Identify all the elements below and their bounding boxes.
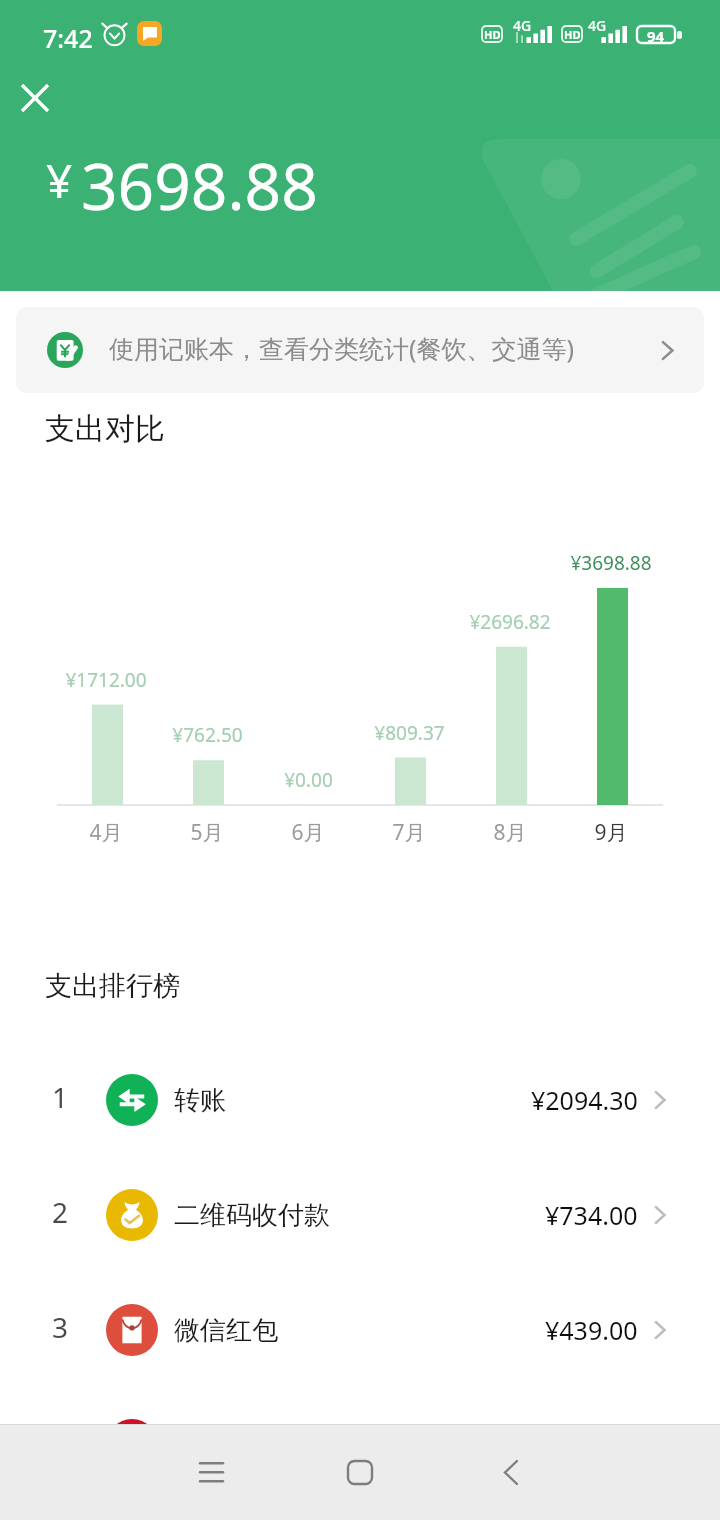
staticText: 支出排行榜 bbox=[45, 969, 180, 1003]
staticText: 9月 bbox=[594, 818, 628, 847]
staticText: 二维码收付款 bbox=[174, 1199, 330, 1232]
staticText: 转账 bbox=[174, 1084, 226, 1117]
staticText: ¥1712.00 bbox=[65, 667, 147, 693]
button[interactable]: Back bbox=[466, 1427, 556, 1517]
staticText: 5月 bbox=[190, 818, 224, 847]
button[interactable]: Close bbox=[10, 73, 60, 123]
button[interactable]: 使用记账本，查看分类统计(餐饮、交通等) bbox=[16, 307, 704, 393]
staticText: ¥734.00 bbox=[545, 1198, 638, 1232]
staticText: ¥0.00 bbox=[284, 767, 333, 793]
staticText: 2 bbox=[52, 1193, 69, 1231]
button[interactable] bbox=[0, 1388, 720, 1502]
staticText: 7:42 bbox=[43, 21, 93, 55]
staticText: 4G bbox=[588, 16, 607, 35]
staticText: 6月 bbox=[291, 818, 325, 847]
staticText: ¥439.00 bbox=[545, 1313, 638, 1347]
button[interactable]: 2 bbox=[0, 1158, 720, 1272]
staticText: ¥762.50 bbox=[172, 722, 243, 748]
staticText: ¥3698.88 bbox=[570, 550, 652, 576]
button[interactable]: 3 bbox=[0, 1273, 720, 1387]
button[interactable]: Home bbox=[315, 1427, 405, 1517]
staticText: 使用记账本，查看分类统计(餐饮、交通等) bbox=[109, 331, 575, 365]
staticText: 支出对比 bbox=[45, 410, 165, 448]
staticText: 8月 bbox=[493, 818, 527, 847]
staticText: 微信红包 bbox=[174, 1314, 278, 1347]
staticText: 4G bbox=[513, 16, 532, 35]
staticText: 94 bbox=[647, 26, 665, 43]
staticText: HD bbox=[564, 27, 581, 42]
staticText: ¥2094.30 bbox=[531, 1083, 638, 1117]
staticText: 3698.88 bbox=[81, 142, 318, 229]
button[interactable]: 1 bbox=[0, 1043, 720, 1157]
staticText: ¥809.37 bbox=[374, 720, 445, 746]
staticText: HD bbox=[484, 27, 501, 42]
staticText: ¥2696.82 bbox=[469, 609, 551, 635]
staticText: 3 bbox=[52, 1308, 69, 1346]
staticText: 4月 bbox=[89, 818, 123, 847]
button[interactable]: Recents bbox=[166, 1427, 256, 1517]
staticText: 7月 bbox=[392, 818, 426, 847]
staticText: 1 bbox=[52, 1078, 69, 1116]
staticText: ¥ bbox=[46, 149, 73, 212]
